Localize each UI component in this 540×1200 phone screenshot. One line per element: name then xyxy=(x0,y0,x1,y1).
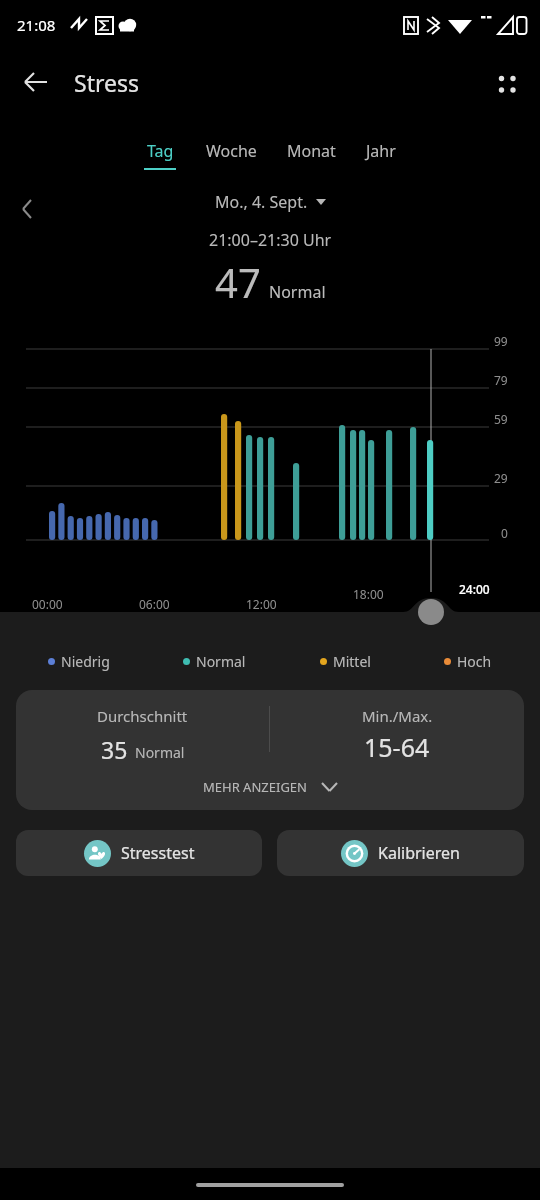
staticText: Min./Max. xyxy=(362,706,433,726)
staticText: Normal xyxy=(135,743,185,762)
button[interactable]: Weitere Optionen xyxy=(482,58,530,106)
staticText: Hoch xyxy=(457,652,492,671)
staticText: Tag xyxy=(147,140,174,162)
staticText: 18:00 xyxy=(353,586,384,602)
staticText: Durchschnitt xyxy=(97,706,188,726)
button[interactable]: Durchschnitt xyxy=(16,690,524,810)
staticText: 00:00 xyxy=(32,596,63,612)
staticText: 35 xyxy=(101,734,128,765)
button[interactable]: Jahr xyxy=(351,138,411,170)
button[interactable]: Zurück xyxy=(12,58,60,106)
staticText: Kalibrieren xyxy=(378,842,460,864)
button[interactable]: Vorheriger Tag xyxy=(6,186,50,230)
staticText: 0 xyxy=(501,525,508,541)
staticText: 24:00 xyxy=(459,581,490,597)
staticText: Mo., 4. Sept. xyxy=(215,191,308,213)
button[interactable]: Kalibrieren xyxy=(277,830,524,876)
staticText: 12:00 xyxy=(246,596,277,612)
staticText: 99 xyxy=(494,333,508,349)
staticText: 21:08 xyxy=(17,15,56,35)
button[interactable]: Woche xyxy=(191,138,272,170)
button[interactable]: Tag xyxy=(129,138,191,172)
staticText: 79 xyxy=(494,372,508,388)
staticText: Woche xyxy=(206,140,257,162)
button[interactable]: Mo., 4. Sept. xyxy=(205,186,336,218)
staticText: 47 xyxy=(215,255,261,309)
staticText: 29 xyxy=(494,470,508,486)
staticText: Stress xyxy=(74,67,139,98)
staticText: Mittel xyxy=(333,652,371,671)
staticText: Niedrig xyxy=(61,652,110,671)
button[interactable]: Stresstest xyxy=(16,830,262,876)
staticText: Stresstest xyxy=(121,842,195,864)
staticText: 21:00–21:30 Uhr xyxy=(209,229,332,251)
staticText: 15-64 xyxy=(364,730,430,764)
staticText: MEHR ANZEIGEN xyxy=(203,778,307,796)
staticText: Monat xyxy=(287,140,336,162)
staticText: 06:00 xyxy=(139,596,170,612)
button[interactable]: Monat xyxy=(272,138,351,170)
staticText: Normal xyxy=(269,281,326,303)
staticText: 59 xyxy=(494,411,508,427)
staticText: Normal xyxy=(196,652,246,671)
staticText: Jahr xyxy=(366,140,396,162)
